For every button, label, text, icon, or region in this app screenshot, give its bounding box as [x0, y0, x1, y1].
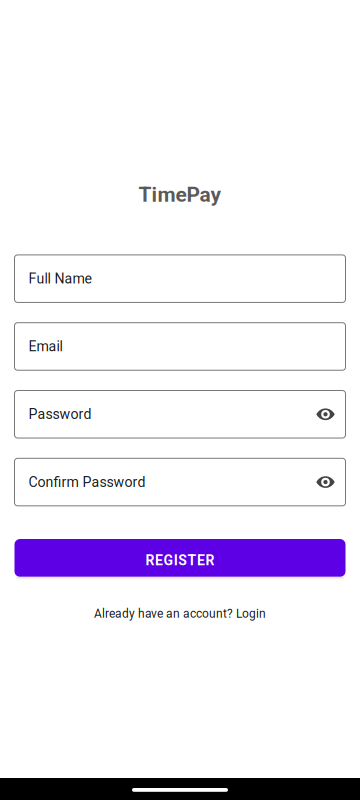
staticText: Full Name [28, 270, 91, 287]
button[interactable]: Confirm Password [14, 458, 345, 506]
button[interactable]: Password [14, 390, 345, 438]
staticText: Already have an account? Login [94, 607, 266, 621]
button[interactable]: Full Name [14, 255, 345, 302]
button[interactable]: REGISTER [14, 539, 345, 580]
button[interactable]: Already have an account? Login [94, 607, 266, 621]
staticText: Password [28, 406, 91, 423]
staticText: TimePay [138, 182, 221, 207]
staticText: Confirm Password [28, 474, 145, 490]
staticText: Email [28, 338, 62, 355]
button[interactable]: Email [14, 323, 345, 370]
staticText: REGISTER [146, 552, 214, 569]
